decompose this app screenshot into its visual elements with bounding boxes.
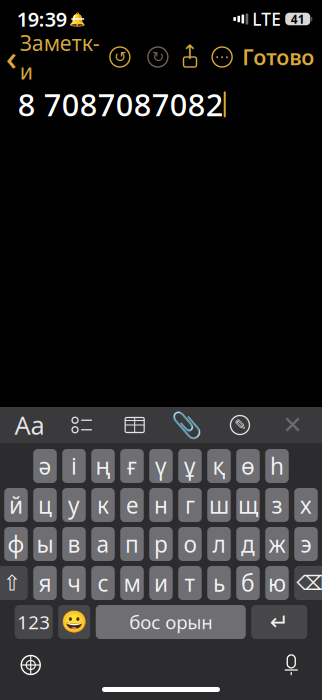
staticText: г bbox=[185, 490, 195, 520]
button[interactable]: к bbox=[91, 488, 115, 522]
button[interactable]: а bbox=[91, 527, 115, 561]
button[interactable]: Dictate bbox=[274, 648, 308, 682]
staticText: ж bbox=[268, 529, 285, 559]
staticText: ⇧ bbox=[3, 571, 21, 595]
button[interactable]: ө bbox=[236, 449, 260, 483]
button[interactable]: ч bbox=[62, 566, 86, 600]
staticText: щ bbox=[238, 490, 258, 520]
button[interactable]: ‹ bbox=[0, 23, 100, 91]
staticText: бос орын bbox=[129, 610, 212, 634]
button[interactable]: и bbox=[149, 566, 173, 600]
button[interactable]: ш bbox=[207, 488, 231, 522]
button[interactable]: э bbox=[294, 527, 318, 561]
button[interactable]: Emoji bbox=[58, 605, 90, 639]
button[interactable]: р bbox=[149, 527, 173, 561]
button[interactable]: н bbox=[149, 488, 173, 522]
staticText: һ bbox=[270, 451, 284, 481]
button[interactable]: т bbox=[178, 566, 202, 600]
staticText: б bbox=[241, 568, 255, 598]
button[interactable]: у bbox=[62, 488, 86, 522]
button[interactable]: Готово bbox=[242, 37, 322, 77]
button[interactable]: Attach bbox=[168, 410, 206, 440]
button[interactable]: ж bbox=[265, 527, 289, 561]
button[interactable]: г bbox=[178, 488, 202, 522]
button[interactable]: й bbox=[4, 488, 28, 522]
button[interactable]: 123 bbox=[15, 605, 53, 639]
button[interactable]: ф bbox=[4, 527, 28, 561]
button[interactable]: Switch keyboard bbox=[14, 648, 48, 682]
staticText: ⌫ bbox=[296, 572, 322, 594]
button[interactable]: Redo bbox=[146, 45, 170, 69]
staticText: 41 bbox=[291, 11, 305, 27]
staticText: ы bbox=[36, 529, 53, 559]
staticText: ө bbox=[241, 451, 255, 481]
button[interactable]: б bbox=[236, 566, 260, 600]
button[interactable]: о bbox=[178, 527, 202, 561]
staticText: л bbox=[212, 529, 225, 559]
staticText: ✎ bbox=[234, 417, 246, 433]
button[interactable]: в bbox=[62, 527, 86, 561]
button[interactable]: Delete bbox=[294, 566, 322, 600]
button[interactable]: ь bbox=[207, 566, 231, 600]
staticText: 19:39 bbox=[17, 6, 67, 32]
staticText: ↺ bbox=[114, 49, 126, 65]
button[interactable]: х bbox=[294, 488, 318, 522]
button[interactable]: More bbox=[210, 45, 234, 69]
button[interactable]: ы bbox=[33, 527, 57, 561]
button[interactable]: Close bbox=[274, 410, 312, 440]
staticText: ә bbox=[38, 451, 51, 481]
button[interactable]: е bbox=[120, 488, 144, 522]
button[interactable]: ү bbox=[149, 449, 173, 483]
staticText: 123 bbox=[17, 610, 50, 634]
button[interactable]: с bbox=[91, 566, 115, 600]
staticText: ф bbox=[7, 529, 24, 559]
button[interactable]: ғ bbox=[120, 449, 144, 483]
staticText: м bbox=[123, 568, 140, 598]
staticText: н bbox=[154, 490, 168, 520]
button[interactable]: Text format bbox=[10, 410, 48, 440]
button[interactable]: м bbox=[120, 566, 144, 600]
staticText: 🔔 bbox=[69, 11, 86, 27]
staticText: ↑ bbox=[181, 41, 198, 63]
button[interactable]: Undo bbox=[108, 45, 132, 69]
staticText: ұ bbox=[184, 451, 196, 481]
staticText: і bbox=[71, 451, 77, 481]
button[interactable]: ұ bbox=[178, 449, 202, 483]
staticText: в bbox=[67, 529, 80, 559]
button[interactable]: я bbox=[33, 566, 57, 600]
button[interactable]: Share bbox=[178, 45, 202, 69]
button[interactable]: ң bbox=[91, 449, 115, 483]
button[interactable]: ц bbox=[33, 488, 57, 522]
button[interactable]: Table bbox=[116, 410, 154, 440]
staticText: 😀 bbox=[61, 610, 88, 634]
staticText: а bbox=[96, 529, 109, 559]
button[interactable]: і bbox=[62, 449, 86, 483]
button[interactable]: ю bbox=[265, 566, 289, 600]
staticText: и bbox=[154, 568, 168, 598]
staticText: Aa bbox=[14, 408, 44, 442]
button[interactable]: л bbox=[207, 527, 231, 561]
staticText: ⋯ bbox=[215, 49, 230, 65]
staticText: ш bbox=[209, 490, 229, 520]
button[interactable]: Return bbox=[251, 605, 307, 639]
staticText: ‹ bbox=[6, 34, 17, 80]
staticText: 📎 bbox=[171, 410, 203, 439]
staticText: 8 7087087082 bbox=[18, 84, 224, 125]
button[interactable]: һ bbox=[265, 449, 289, 483]
button[interactable]: Checklist bbox=[63, 410, 101, 440]
button[interactable]: бос орын bbox=[96, 605, 246, 639]
button[interactable]: ә bbox=[33, 449, 57, 483]
button[interactable]: Shift bbox=[0, 566, 28, 600]
staticText: Готово bbox=[242, 43, 314, 71]
staticText: ю bbox=[268, 568, 286, 598]
staticText: ч bbox=[67, 568, 80, 598]
button[interactable]: щ bbox=[236, 488, 260, 522]
button[interactable]: п bbox=[120, 527, 144, 561]
button[interactable]: қ bbox=[207, 449, 231, 483]
staticText: қ bbox=[212, 451, 225, 481]
staticText: с bbox=[97, 568, 108, 598]
button[interactable]: з bbox=[265, 488, 289, 522]
button[interactable]: д bbox=[236, 527, 260, 561]
staticText: ↻ bbox=[152, 49, 164, 65]
button[interactable]: Markup bbox=[221, 410, 259, 440]
